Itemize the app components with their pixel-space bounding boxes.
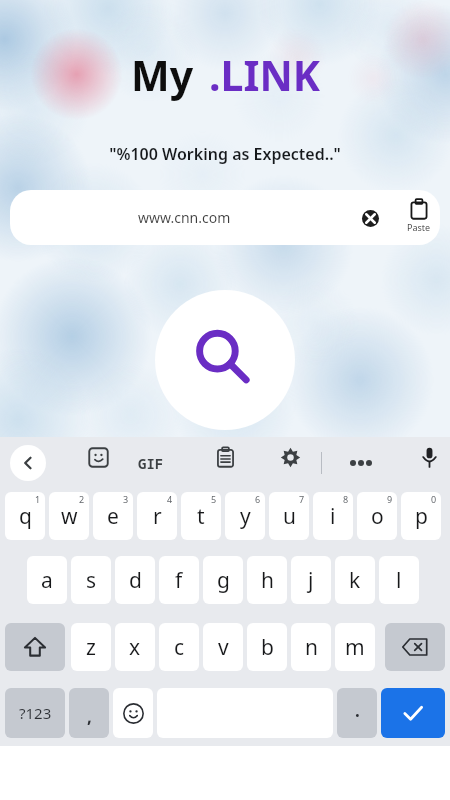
button[interactable]: u: [269, 492, 309, 540]
button[interactable]: Emoji: [113, 688, 153, 738]
button[interactable]: Voice input: [409, 437, 449, 477]
staticText: 5: [211, 493, 217, 505]
staticText: .: [355, 699, 360, 722]
button[interactable]: Clipboard: [205, 437, 245, 477]
button[interactable]: n: [291, 623, 331, 671]
staticText: My: [131, 47, 194, 103]
button[interactable]: f: [159, 556, 199, 604]
staticText: 7: [299, 493, 305, 505]
button[interactable]: ,: [69, 688, 109, 738]
button[interactable]: .: [337, 688, 377, 738]
staticText: f: [175, 566, 183, 595]
button[interactable]: www.cnn.com: [10, 190, 440, 245]
staticText: Paste: [407, 221, 431, 233]
button[interactable]: l: [379, 556, 419, 604]
staticText: b: [261, 633, 274, 662]
staticText: 8: [343, 493, 349, 505]
staticText: o: [371, 502, 384, 531]
staticText: "%100 Working as Expected..": [109, 143, 341, 165]
button[interactable]: c: [159, 623, 199, 671]
button[interactable]: i: [313, 492, 353, 540]
staticText: 9: [387, 493, 393, 505]
staticText: e: [107, 502, 119, 531]
button[interactable]: v: [203, 623, 243, 671]
button[interactable]: g: [203, 556, 243, 604]
staticText: n: [305, 633, 318, 662]
staticText: l: [396, 566, 402, 595]
button[interactable]: p: [401, 492, 441, 540]
button[interactable]: ?123: [5, 688, 65, 738]
button[interactable]: e: [93, 492, 133, 540]
button[interactable]: d: [115, 556, 155, 604]
button[interactable]: Paste: [399, 199, 439, 233]
staticText: q: [19, 502, 32, 531]
button[interactable]: GIF: [131, 443, 171, 483]
button[interactable]: Stickers: [78, 437, 118, 477]
staticText: d: [129, 566, 142, 595]
staticText: ,: [87, 705, 92, 728]
staticText: .LINK: [209, 47, 320, 103]
staticText: m: [345, 633, 365, 662]
staticText: g: [217, 566, 230, 595]
staticText: t: [197, 502, 205, 531]
staticText: v: [218, 633, 229, 662]
button[interactable]: More options: [341, 443, 381, 483]
button[interactable]: t: [181, 492, 221, 540]
staticText: z: [86, 633, 96, 662]
staticText: p: [415, 502, 428, 531]
staticText: 6: [255, 493, 261, 505]
button[interactable]: Search: [155, 290, 295, 430]
button[interactable]: s: [71, 556, 111, 604]
staticText: GIF: [138, 454, 164, 473]
staticText: u: [283, 502, 296, 531]
button[interactable]: b: [247, 623, 287, 671]
button[interactable]: r: [137, 492, 177, 540]
staticText: 4: [167, 493, 173, 505]
button[interactable]: j: [291, 556, 331, 604]
staticText: k: [349, 566, 361, 595]
staticText: x: [129, 633, 141, 662]
button[interactable]: y: [225, 492, 265, 540]
button[interactable]: Enter: [381, 688, 445, 738]
staticText: 2: [79, 493, 85, 505]
button[interactable]: x: [115, 623, 155, 671]
staticText: w: [61, 502, 78, 531]
staticText: j: [308, 566, 314, 595]
button[interactable]: z: [71, 623, 111, 671]
button[interactable]: h: [247, 556, 287, 604]
staticText: www.cnn.com: [138, 208, 231, 227]
button[interactable]: o: [357, 492, 397, 540]
button[interactable]: k: [335, 556, 375, 604]
staticText: y: [240, 502, 251, 531]
staticText: 3: [123, 493, 129, 505]
button[interactable]: Back: [10, 445, 46, 481]
button[interactable]: Shift: [5, 623, 65, 671]
staticText: s: [86, 566, 97, 595]
button[interactable]: m: [335, 623, 375, 671]
staticText: h: [261, 566, 274, 595]
button[interactable]: Clear text: [352, 200, 388, 236]
staticText: 1: [35, 493, 41, 505]
button[interactable]: Settings: [270, 437, 310, 477]
staticText: ?123: [19, 703, 52, 723]
staticText: i: [330, 502, 336, 531]
button[interactable]: a: [27, 556, 67, 604]
button[interactable]: q: [5, 492, 45, 540]
staticText: r: [153, 502, 162, 531]
button[interactable]: Backspace: [385, 623, 445, 671]
staticText: c: [174, 633, 185, 662]
staticText: 0: [431, 493, 437, 505]
staticText: a: [41, 566, 53, 595]
button[interactable]: w: [49, 492, 89, 540]
